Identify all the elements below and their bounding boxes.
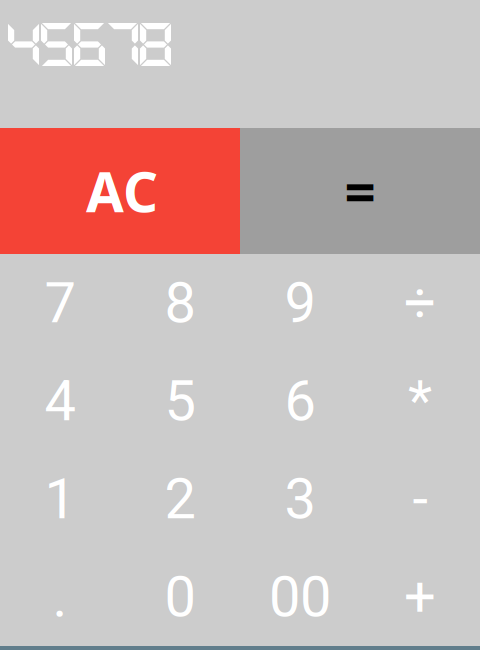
staticText: 7 [44, 270, 75, 336]
button[interactable]: 4 [0, 352, 120, 450]
staticText: 3 [284, 466, 315, 532]
staticText: 0 [164, 564, 195, 630]
button[interactable]: = [240, 128, 480, 254]
staticText: 6 [284, 368, 315, 434]
staticText: . [52, 564, 67, 630]
button[interactable]: 2 [120, 450, 240, 548]
button[interactable]: 3 [240, 450, 360, 548]
staticText: ÷ [404, 270, 436, 336]
button[interactable]: 0 [120, 548, 240, 646]
button[interactable]: + [360, 548, 480, 646]
staticText: 4 [44, 368, 75, 434]
staticText: 00 [269, 564, 331, 630]
button[interactable]: 7 [0, 254, 120, 352]
button[interactable]: 5 [120, 352, 240, 450]
staticText: * [408, 368, 432, 434]
button[interactable]: ÷ [360, 254, 480, 352]
staticText: 2 [164, 466, 195, 532]
button[interactable]: 6 [240, 352, 360, 450]
button[interactable]: AC [0, 128, 240, 254]
staticText: 1 [44, 466, 75, 532]
button[interactable]: - [360, 450, 480, 548]
staticText: - [412, 466, 427, 532]
staticText: = [344, 155, 375, 227]
staticText: + [404, 564, 436, 630]
staticText: AC [86, 155, 158, 227]
button[interactable]: 00 [240, 548, 360, 646]
button[interactable]: 8 [120, 254, 240, 352]
staticText: 8 [164, 270, 195, 336]
button[interactable]: 1 [0, 450, 120, 548]
staticText: 9 [284, 270, 315, 336]
staticText: 5 [164, 368, 195, 434]
button[interactable]: 9 [240, 254, 360, 352]
button[interactable]: * [360, 352, 480, 450]
